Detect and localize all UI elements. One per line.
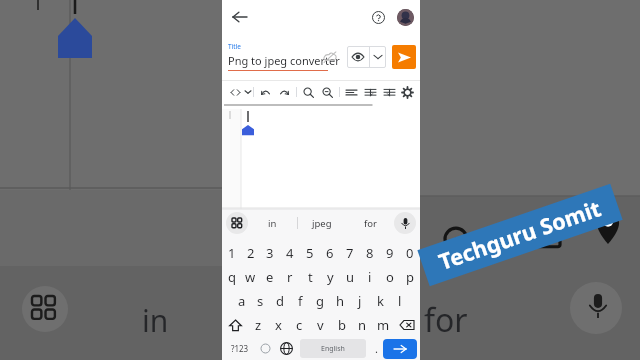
staticText: w [245, 268, 256, 286]
button[interactable]: Account [397, 9, 414, 26]
button[interactable]: . [369, 337, 383, 360]
staticText: v [317, 316, 324, 334]
button[interactable]: Enter [383, 339, 417, 359]
staticText: p [406, 268, 414, 286]
button[interactable]: Emoji [255, 337, 275, 360]
staticText: o [386, 268, 394, 286]
staticText: s [257, 292, 264, 310]
button[interactable]: Search [299, 83, 318, 102]
button[interactable]: t [300, 265, 320, 289]
button[interactable]: Change language [275, 337, 297, 360]
staticText: i [368, 268, 372, 286]
button[interactable]: w [241, 265, 260, 289]
button[interactable]: Settings [399, 83, 416, 102]
staticText: 1 [228, 244, 236, 262]
staticText: u [346, 268, 355, 286]
button[interactable]: Help [367, 6, 389, 28]
button[interactable]: r [280, 265, 300, 289]
button[interactable]: Offline [319, 46, 341, 68]
button[interactable]: d [270, 289, 290, 313]
button[interactable]: Code [226, 83, 245, 102]
button[interactable]: Indent right [380, 83, 399, 102]
button[interactable]: 7 [340, 241, 360, 265]
button[interactable]: 2 [241, 241, 260, 265]
button[interactable]: ?123 [225, 337, 255, 360]
button[interactable]: 9 [380, 241, 400, 265]
button[interactable]: Voice input [394, 212, 416, 234]
staticText: English [321, 344, 345, 354]
button[interactable]: i [360, 265, 380, 289]
staticText: e [266, 268, 274, 286]
button[interactable]: Run [392, 45, 416, 69]
button[interactable]: h [330, 289, 350, 313]
button[interactable]: for [346, 209, 394, 237]
staticText: Png to jpeg converter [228, 53, 340, 68]
button[interactable]: 4 [280, 241, 300, 265]
button[interactable]: b [331, 313, 352, 337]
button[interactable]: Backspace [394, 313, 420, 337]
button[interactable]: j [350, 289, 370, 313]
button[interactable]: x [268, 313, 289, 337]
button[interactable]: Align [342, 83, 361, 102]
button[interactable]: Toolbar [226, 212, 248, 234]
button[interactable]: More preview options [370, 46, 386, 68]
button[interactable]: s [251, 289, 270, 313]
button[interactable]: Preview [347, 46, 369, 68]
button[interactable]: Indent left [361, 83, 380, 102]
staticText: t [308, 268, 313, 286]
staticText: z [255, 316, 262, 334]
button[interactable]: jpeg [298, 209, 346, 237]
button[interactable]: Redo [275, 83, 294, 102]
button[interactable]: k [370, 289, 390, 313]
button[interactable]: n [352, 313, 373, 337]
button[interactable]: 8 [360, 241, 380, 265]
button[interactable]: v [310, 313, 331, 337]
staticText: d [276, 292, 284, 310]
staticText: l [398, 292, 402, 310]
button[interactable]: o [380, 265, 400, 289]
staticText: 2 [247, 244, 255, 262]
button[interactable]: f [290, 289, 310, 313]
button[interactable]: y [320, 265, 340, 289]
staticText: in [142, 300, 169, 341]
button[interactable]: Undo [256, 83, 275, 102]
staticText: 3 [266, 244, 274, 262]
staticText: h [336, 292, 345, 310]
button[interactable]: u [340, 265, 360, 289]
staticText: Techguru Somit [435, 193, 605, 277]
button[interactable]: 6 [320, 241, 340, 265]
button[interactable]: in [248, 209, 297, 237]
staticText: f [298, 292, 303, 310]
button[interactable]: 0 [400, 241, 420, 265]
button[interactable]: Replace [318, 83, 337, 102]
button[interactable]: English [300, 339, 366, 358]
button[interactable]: 5 [300, 241, 320, 265]
button[interactable]: c [289, 313, 310, 337]
staticText: 4 [286, 244, 294, 262]
button[interactable]: 3 [260, 241, 280, 265]
button[interactable]: a [232, 289, 251, 313]
button[interactable]: Back [228, 5, 252, 29]
button[interactable]: Shift [222, 313, 248, 337]
staticText: c [296, 316, 303, 334]
staticText: a [238, 292, 246, 310]
staticText: b [338, 316, 346, 334]
button[interactable]: q [222, 265, 241, 289]
staticText: Title [228, 42, 241, 51]
staticText: j [358, 292, 362, 310]
staticText: k [377, 292, 384, 310]
staticText: . [375, 341, 378, 356]
staticText: r [287, 268, 293, 286]
button[interactable]: g [310, 289, 330, 313]
button[interactable]: m [373, 313, 394, 337]
staticText: ?123 [231, 343, 249, 354]
button[interactable]: 1 [222, 241, 241, 265]
staticText: for [364, 217, 377, 230]
button[interactable]: e [260, 265, 280, 289]
staticText: jpeg [312, 217, 332, 230]
button[interactable]: l [390, 289, 410, 313]
staticText: n [358, 316, 367, 334]
button[interactable]: z [248, 313, 268, 337]
button[interactable]: p [400, 265, 420, 289]
staticText: q [228, 268, 236, 286]
